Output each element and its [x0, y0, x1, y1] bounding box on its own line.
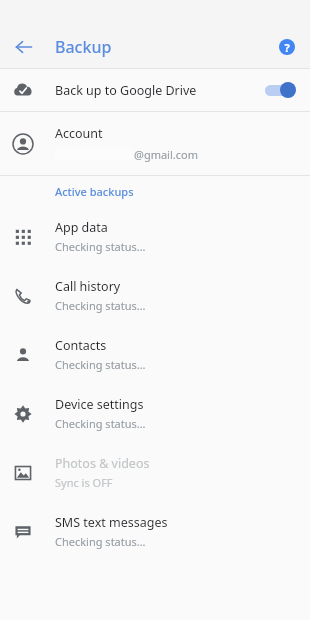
staticText: Photos & videos — [55, 455, 150, 472]
button[interactable]: Account — [0, 112, 310, 175]
button[interactable]: Contacts — [0, 325, 310, 384]
staticText: Checking status… — [55, 239, 146, 254]
staticText: Checking status… — [55, 357, 146, 372]
staticText: Contacts — [55, 337, 107, 354]
staticText: @gmail.com — [134, 147, 198, 162]
button[interactable]: Device settings — [0, 384, 310, 443]
button[interactable]: SMS text messages — [0, 502, 310, 561]
staticText: Checking status… — [55, 416, 146, 431]
button[interactable]: Photos & videos — [0, 443, 310, 502]
button[interactable]: Call history — [0, 266, 310, 325]
staticText: Checking status… — [55, 298, 146, 313]
staticText: Sync is OFF — [55, 475, 113, 490]
staticText: Back up to Google Drive — [55, 82, 197, 99]
staticText: Backup — [55, 36, 112, 58]
staticText: SMS text messages — [55, 514, 168, 531]
staticText: App data — [55, 219, 108, 236]
staticText: ? — [284, 40, 290, 55]
button[interactable]: App data — [0, 207, 310, 266]
staticText: Device settings — [55, 396, 144, 413]
staticText: Active backups — [55, 184, 134, 199]
staticText: Call history — [55, 278, 121, 295]
button[interactable]: Back — [8, 31, 40, 63]
staticText: Account — [55, 125, 103, 142]
staticText: Checking status… — [55, 534, 146, 549]
button[interactable]: Back up to Google Drive — [0, 69, 310, 111]
button[interactable]: Help — [272, 32, 302, 62]
